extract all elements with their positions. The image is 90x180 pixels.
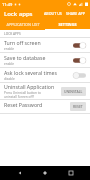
staticText: Reset Password	[4, 101, 43, 108]
button[interactable]: Home	[39, 167, 51, 179]
staticText: APPLICATION LIST	[6, 22, 40, 27]
staticText: LOCK APPS	[4, 32, 21, 36]
staticText: Save to database	[4, 54, 46, 61]
staticText: Uninstall Application	[4, 83, 55, 90]
staticText: disable	[4, 77, 15, 81]
staticText: Lock apps	[4, 10, 33, 18]
staticText: ABOUT US	[44, 11, 62, 16]
staticText: SETTINGS	[58, 22, 77, 27]
button[interactable]: SHARE APP	[64, 9, 87, 18]
staticText: uninstall Screen off?	[4, 95, 35, 99]
button[interactable]: Uninstall Application	[0, 83, 90, 99]
button[interactable]: Toggle on	[73, 57, 86, 64]
button[interactable]: Ask lock several times	[0, 68, 90, 82]
button[interactable]: Toggle off	[73, 72, 86, 79]
staticText: SHARE APP	[66, 11, 85, 16]
staticText: Ask lock several times	[4, 69, 57, 76]
button[interactable]: Toggle on	[73, 42, 86, 49]
button[interactable]: SETTINGS	[45, 19, 90, 30]
button[interactable]: Save to database	[0, 53, 90, 67]
staticText: enable	[4, 47, 15, 51]
button[interactable]: Recent apps	[65, 167, 77, 179]
staticText: Press Uninstall button to	[4, 91, 41, 95]
button[interactable]: Back	[14, 167, 26, 179]
button[interactable]: ABOUT US	[42, 9, 64, 18]
button[interactable]: RESET	[70, 102, 86, 111]
staticText: RESET	[73, 104, 83, 109]
staticText: enable	[4, 62, 15, 66]
staticText: 11:49	[2, 2, 13, 7]
button[interactable]: UNINSTALL	[61, 87, 86, 96]
staticText: UNINSTALL	[64, 89, 83, 94]
button[interactable]: APPLICATION LIST	[0, 19, 45, 30]
button[interactable]: Turn off screen	[0, 38, 90, 52]
staticText: Turn off screen	[4, 39, 41, 46]
button[interactable]: Reset Password	[0, 100, 90, 113]
